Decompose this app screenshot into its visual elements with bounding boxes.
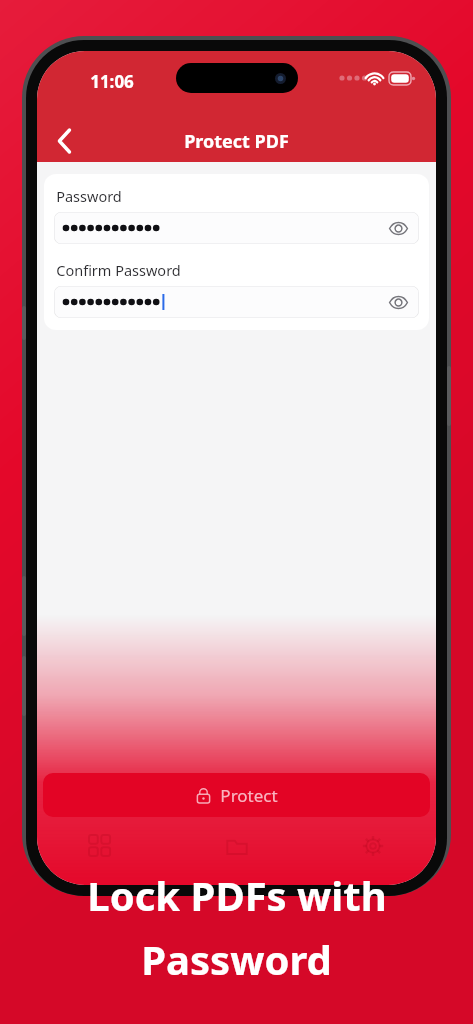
staticText: Password: [56, 186, 122, 206]
staticText: Password: [141, 932, 332, 986]
staticText: 11:06: [90, 70, 134, 93]
staticText: Confirm Password: [56, 260, 181, 280]
button[interactable]: Toggle password visibility: [54, 212, 419, 244]
staticText: Protect PDF: [184, 129, 289, 154]
button[interactable]: Toggle password visibility: [54, 286, 419, 318]
staticText: Lock PDFs with: [87, 868, 387, 922]
button[interactable]: Protect: [43, 773, 430, 817]
button[interactable]: Tools: [77, 823, 123, 869]
button[interactable]: Settings: [350, 823, 396, 869]
button[interactable]: Toggle password visibility: [383, 287, 413, 317]
button[interactable]: Files: [214, 823, 260, 869]
staticText: Protect: [220, 784, 278, 807]
button[interactable]: Back: [43, 120, 87, 162]
button[interactable]: Toggle password visibility: [383, 213, 413, 243]
